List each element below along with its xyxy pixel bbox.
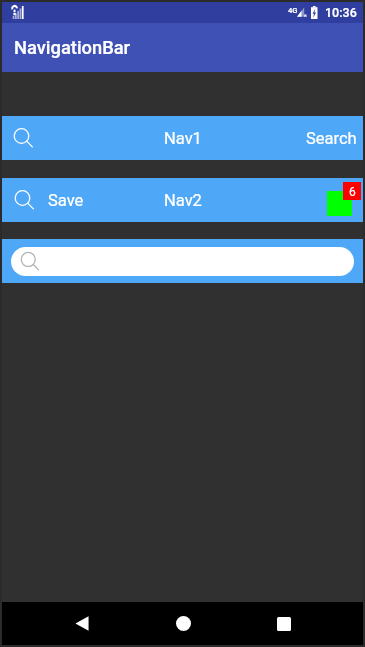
- staticText: 4G: [288, 6, 298, 15]
- button[interactable]: [11, 247, 354, 276]
- button[interactable]: Recent apps: [257, 602, 311, 645]
- staticText: NavigationBar: [14, 37, 131, 58]
- staticText: Nav1: [164, 129, 202, 148]
- button[interactable]: Home: [156, 602, 210, 645]
- staticText: Nav2: [164, 191, 202, 210]
- button[interactable]: Back: [55, 602, 109, 645]
- staticText: 6: [349, 185, 356, 199]
- staticText: Search: [306, 129, 357, 148]
- staticText: 10:36: [325, 5, 357, 20]
- button[interactable]: Save: [2, 178, 363, 222]
- staticText: Save: [48, 191, 84, 210]
- button[interactable]: Search: [2, 116, 363, 160]
